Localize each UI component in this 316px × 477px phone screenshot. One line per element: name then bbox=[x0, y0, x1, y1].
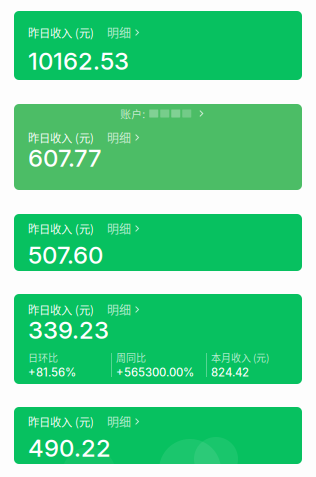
button[interactable]: 明细 bbox=[107, 416, 139, 427]
staticText: 明细 bbox=[107, 301, 131, 318]
staticText: 507.60 bbox=[28, 240, 103, 269]
staticText: 日环比 bbox=[28, 350, 58, 365]
staticText: 账户: bbox=[120, 106, 145, 121]
button[interactable]: 明细 bbox=[107, 223, 139, 234]
staticText: 昨日收入 (元) bbox=[28, 24, 94, 41]
staticText: 昨日收入 (元) bbox=[28, 129, 94, 146]
button[interactable]: 昨日收入 (元) bbox=[0, 11, 316, 80]
staticText: 昨日收入 (元) bbox=[28, 301, 94, 318]
staticText: 明细 bbox=[107, 24, 131, 41]
button[interactable]: 昨日收入 (元) bbox=[0, 294, 316, 384]
button[interactable]: 明细 bbox=[107, 304, 139, 315]
staticText: 周同比 bbox=[116, 350, 146, 365]
staticText: 昨日收入 (元) bbox=[28, 413, 94, 430]
staticText: +565300.00% bbox=[116, 366, 194, 379]
staticText: 明细 bbox=[107, 220, 131, 237]
button[interactable]: 明细 bbox=[107, 132, 139, 143]
staticText: 明细 bbox=[107, 129, 131, 146]
staticText: 339.23 bbox=[28, 315, 109, 344]
staticText: 昨日收入 (元) bbox=[28, 220, 94, 237]
staticText: 490.22 bbox=[28, 433, 111, 462]
button[interactable]: 昨日收入 (元) bbox=[0, 214, 316, 271]
staticText: 607.77 bbox=[28, 143, 101, 172]
staticText: 本月收入 (元) bbox=[211, 350, 269, 365]
staticText: +81.56% bbox=[28, 366, 76, 379]
button[interactable]: 账户: bbox=[0, 104, 316, 190]
button[interactable]: 账户: bbox=[28, 109, 288, 118]
button[interactable]: 昨日收入 (元) bbox=[0, 407, 316, 464]
staticText: 明细 bbox=[107, 413, 131, 430]
staticText: 824.42 bbox=[211, 366, 249, 379]
button[interactable]: 明细 bbox=[107, 27, 139, 38]
staticText: 10162.53 bbox=[28, 46, 129, 75]
